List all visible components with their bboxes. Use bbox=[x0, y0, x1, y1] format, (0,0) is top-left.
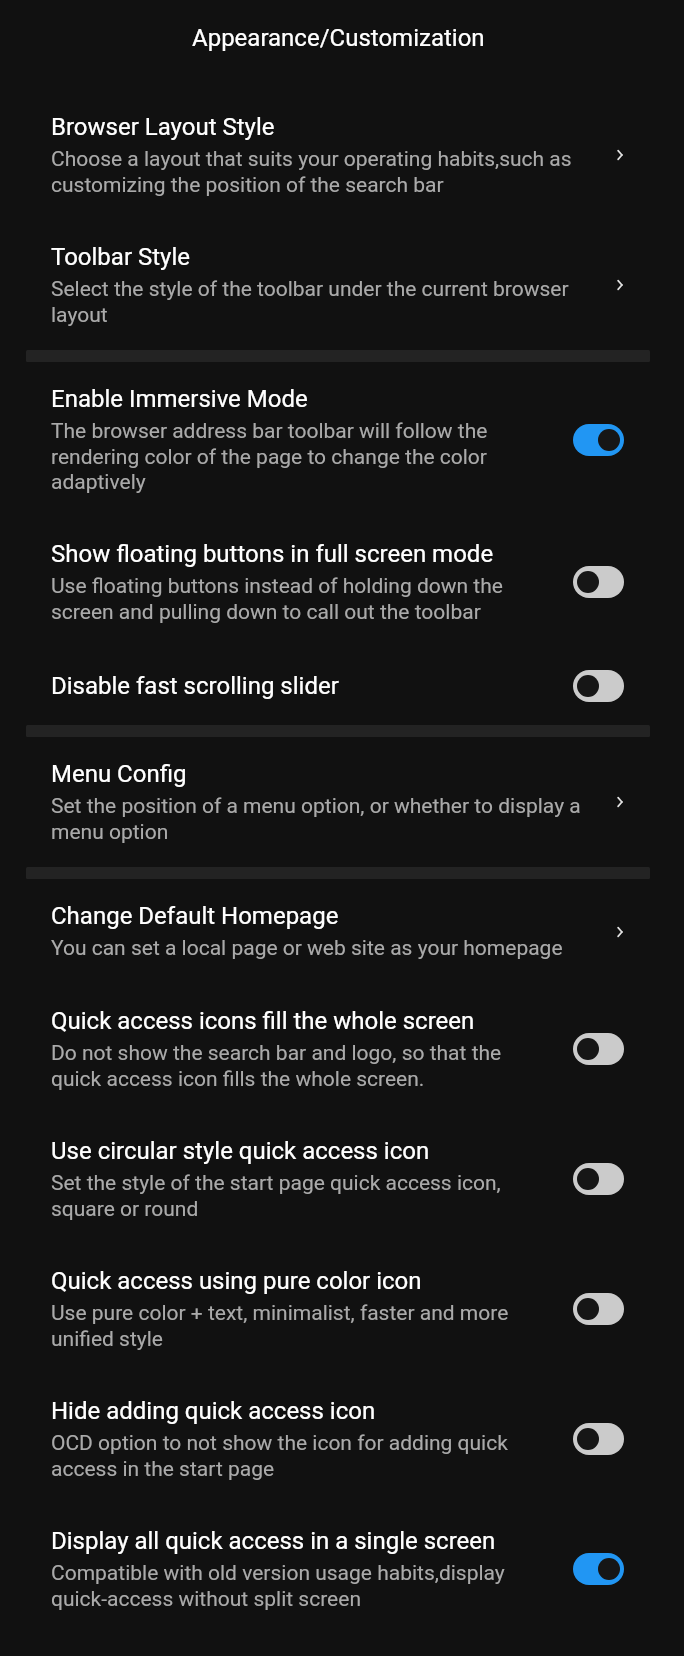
staticText: Disable fast scrolling slider bbox=[51, 672, 339, 700]
staticText: Use circular style quick access icon bbox=[51, 1137, 430, 1165]
staticText: Use floating buttons instead of holding … bbox=[51, 574, 513, 624]
staticText: Menu Config bbox=[51, 760, 187, 788]
button[interactable]: Display all quick access in a single scr… bbox=[573, 1553, 624, 1585]
button[interactable]: Quick access icons fill the whole screen… bbox=[573, 1033, 624, 1065]
staticText: Toolbar Style bbox=[51, 243, 191, 271]
button[interactable]: Menu Config bbox=[0, 737, 684, 867]
staticText: You can set a local page or web site as … bbox=[51, 936, 563, 961]
staticText: Display all quick access in a single scr… bbox=[51, 1527, 496, 1555]
button[interactable]: Enable Immersive Mode bbox=[0, 362, 684, 517]
staticText: Quick access icons fill the whole screen bbox=[51, 1007, 475, 1035]
staticText: Browser Layout Style bbox=[51, 113, 275, 141]
staticText: Do not show the search bar and logo, so … bbox=[51, 1041, 513, 1091]
button[interactable]: Quick access using pure color icon, off bbox=[573, 1293, 624, 1325]
staticText: OCD option to not show the icon for addi… bbox=[51, 1431, 513, 1481]
staticText: Use pure color + text, minimalist, faste… bbox=[51, 1301, 513, 1351]
staticText: Show floating buttons in full screen mod… bbox=[51, 540, 494, 568]
button[interactable]: Quick access using pure color icon bbox=[0, 1244, 684, 1374]
staticText: Compatible with old version usage habits… bbox=[51, 1561, 513, 1611]
button[interactable]: Disable fast scrolling slider bbox=[0, 647, 684, 725]
staticText: Enable Immersive Mode bbox=[51, 385, 308, 413]
button[interactable]: Quick access icons fill the whole screen bbox=[0, 984, 684, 1114]
staticText: Quick access using pure color icon bbox=[51, 1267, 422, 1295]
staticText: Hide adding quick access icon bbox=[51, 1397, 376, 1425]
staticText: The browser address bar toolbar will fol… bbox=[51, 419, 513, 494]
staticText: Set the style of the start page quick ac… bbox=[51, 1171, 513, 1221]
button[interactable]: Hide adding quick access icon bbox=[0, 1374, 684, 1504]
button[interactable]: Use circular style quick access icon, of… bbox=[573, 1163, 624, 1195]
button[interactable]: Change Default Homepage bbox=[0, 879, 684, 984]
button[interactable]: Browser Layout Style bbox=[0, 90, 684, 220]
staticText: Set the position of a menu option, or wh… bbox=[51, 794, 591, 844]
other: Open Menu Config bbox=[613, 793, 627, 811]
button[interactable]: Disable fast scrolling slider, off bbox=[573, 670, 624, 702]
staticText: Appearance/Customization bbox=[192, 24, 485, 52]
button[interactable]: Toolbar Style bbox=[0, 220, 684, 350]
other: Open Toolbar Style bbox=[613, 276, 627, 294]
other: Open Change Default Homepage bbox=[613, 923, 627, 941]
button[interactable]: Hide adding quick access icon, off bbox=[573, 1423, 624, 1455]
staticText: Select the style of the toolbar under th… bbox=[51, 277, 591, 327]
other: Open Browser Layout Style bbox=[613, 146, 627, 164]
button[interactable]: Display all quick access in a single scr… bbox=[0, 1504, 684, 1634]
staticText: Choose a layout that suits your operatin… bbox=[51, 147, 591, 197]
button[interactable]: Show floating buttons in full screen mod… bbox=[573, 566, 624, 598]
staticText: Change Default Homepage bbox=[51, 902, 339, 930]
button[interactable]: Show floating buttons in full screen mod… bbox=[0, 517, 684, 647]
button[interactable]: Enable Immersive Mode, on bbox=[573, 424, 624, 456]
button[interactable]: Use circular style quick access icon bbox=[0, 1114, 684, 1244]
